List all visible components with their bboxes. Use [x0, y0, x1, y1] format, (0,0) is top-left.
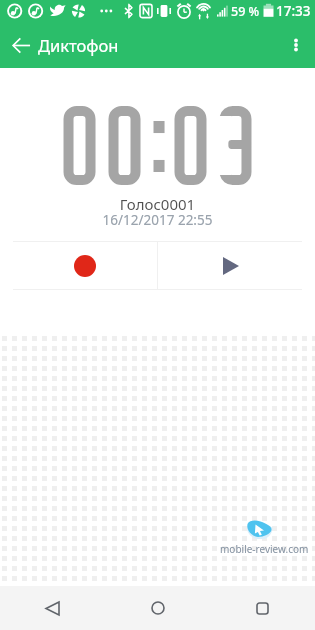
button[interactable]: Recent apps: [210, 586, 315, 630]
button[interactable]: Back: [0, 586, 105, 630]
staticText: 16/12/2017 22:55: [0, 211, 315, 229]
staticText: 59 %: [231, 3, 260, 20]
button[interactable]: Back: [4, 28, 38, 62]
button[interactable]: More options: [279, 28, 313, 62]
staticText: mobile-review.com: [220, 542, 309, 556]
button[interactable]: Play: [158, 242, 302, 289]
button[interactable]: Record: [13, 242, 157, 289]
staticText: Голос0001: [0, 194, 315, 214]
staticText: Диктофон: [38, 34, 119, 56]
button[interactable]: Home: [105, 586, 210, 630]
staticText: 17:33: [276, 2, 311, 20]
